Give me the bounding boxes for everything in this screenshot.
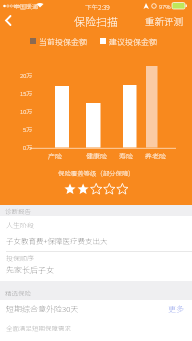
staticText: 当前投保金额 [39, 36, 87, 46]
staticText: 先家长后子女 [6, 264, 54, 276]
staticText: 5万 [23, 125, 33, 133]
staticText: 养老险 [145, 151, 166, 161]
staticText: 健康险 [86, 151, 107, 161]
button[interactable] [0, 300, 192, 333]
staticText: 更多 [168, 303, 184, 315]
staticText: 建议投保金额 [109, 36, 157, 46]
staticText: 保险覆盖等级（部分保障） [58, 169, 135, 178]
staticText: 下午2:39 [85, 2, 110, 11]
staticText: 精选保险 [5, 288, 31, 297]
staticText: 保险扫描 [74, 13, 118, 29]
staticText: 短期综合意外险30天 [6, 303, 79, 315]
staticText: 投保顺序 [6, 253, 34, 263]
button[interactable]: 更多 [156, 303, 184, 315]
staticText: 重新评测 [145, 14, 184, 28]
staticText: 诊断报告 [5, 206, 31, 215]
staticText: 97% [159, 2, 171, 11]
staticText: 0万 [23, 143, 33, 151]
staticText: 人生阶段 [6, 220, 34, 230]
staticText: 中国联通 [14, 2, 39, 11]
staticText: 全面满足短期保障需求 [6, 323, 71, 332]
button[interactable] [0, 12, 24, 30]
staticText: 产险 [48, 151, 62, 161]
staticText: 子女教育费+保障医疗费支出大 [6, 235, 108, 246]
staticText: 20万 [20, 71, 33, 79]
staticText: 15万 [20, 89, 33, 97]
button[interactable]: 重新评测 [140, 13, 188, 29]
staticText: 寿险 [119, 151, 133, 161]
staticText: 10万 [20, 107, 33, 115]
